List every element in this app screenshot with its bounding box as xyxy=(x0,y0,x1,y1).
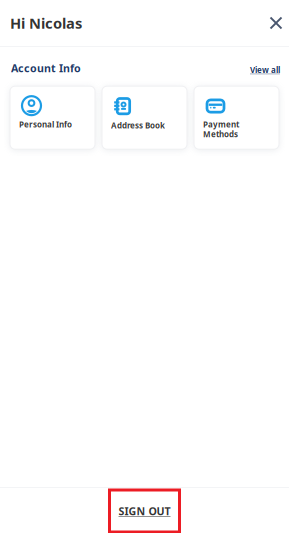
button[interactable]: Address Book xyxy=(102,86,187,149)
staticText: Account Info xyxy=(11,61,81,75)
button[interactable]: SIGN OUT xyxy=(109,490,179,532)
staticText: Hi Nicolas xyxy=(10,13,82,33)
staticText: Payment xyxy=(203,119,239,130)
button[interactable]: Close xyxy=(264,11,288,35)
button[interactable]: Personal Info xyxy=(10,86,95,149)
button[interactable]: Payment xyxy=(194,86,279,149)
staticText: Address Book xyxy=(111,120,165,131)
button[interactable]: View all xyxy=(250,64,280,75)
staticText: Methods xyxy=(203,129,238,139)
staticText: Personal Info xyxy=(19,119,72,130)
staticText: SIGN OUT xyxy=(118,504,170,518)
staticText: View all xyxy=(250,64,280,75)
